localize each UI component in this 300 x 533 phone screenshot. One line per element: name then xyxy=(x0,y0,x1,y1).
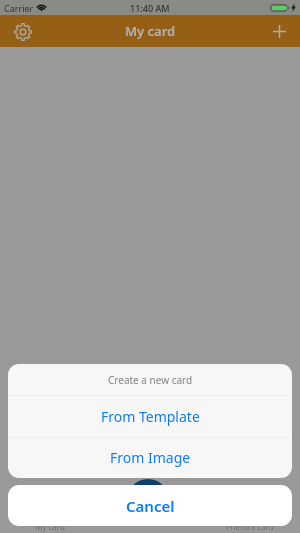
button[interactable]: Create xyxy=(127,479,169,521)
staticText: From Template xyxy=(101,407,200,426)
button[interactable]: From Image xyxy=(8,437,292,478)
button[interactable]: From Template xyxy=(8,395,292,437)
staticText: Cancel xyxy=(126,496,175,516)
staticText: My card xyxy=(125,22,176,40)
staticText: From Image xyxy=(110,448,191,467)
staticText: Friend's card xyxy=(226,521,274,532)
button[interactable]: Add card xyxy=(263,16,295,47)
button[interactable]: Settings xyxy=(7,16,39,47)
button[interactable] xyxy=(100,505,200,533)
staticText: Carrier xyxy=(4,2,34,14)
staticText: Create a new card xyxy=(108,373,193,387)
button[interactable]: Cancel xyxy=(8,485,292,526)
button[interactable]: Friend's card xyxy=(200,505,300,533)
staticText: My card xyxy=(35,521,65,532)
button[interactable]: My card xyxy=(0,505,100,533)
staticText: 11:40 AM xyxy=(130,2,170,14)
